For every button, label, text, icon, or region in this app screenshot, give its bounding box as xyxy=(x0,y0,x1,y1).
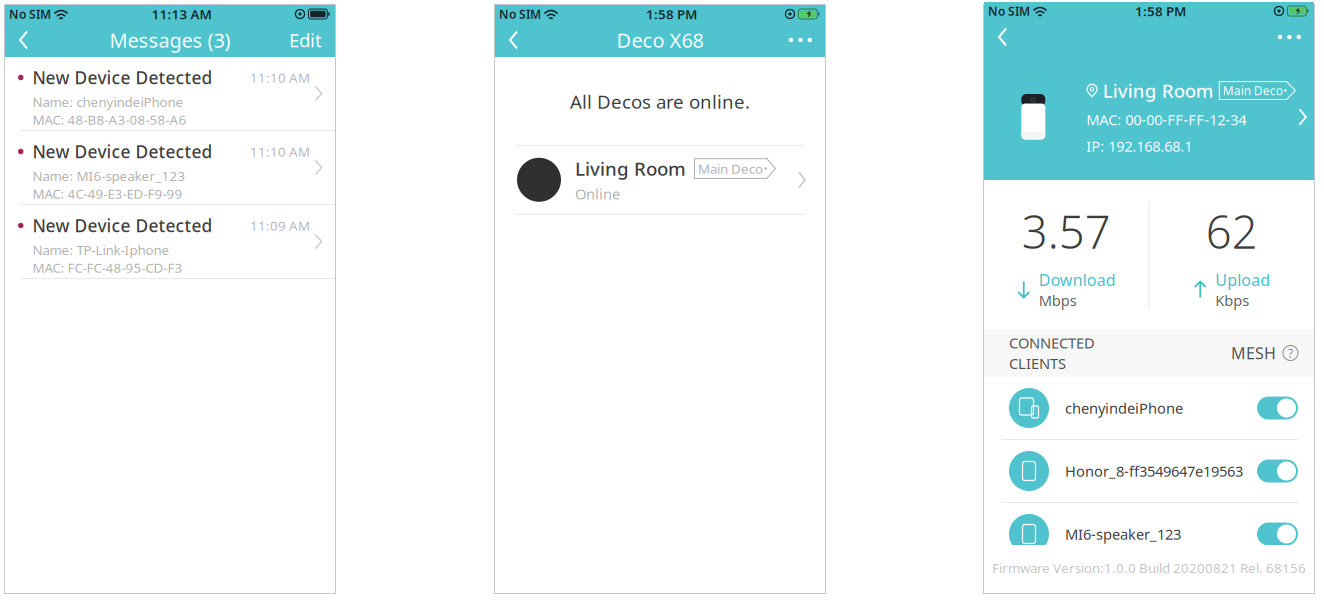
staticText: Online xyxy=(575,184,620,203)
staticText: 62 xyxy=(1206,201,1258,261)
staticText: MESH xyxy=(1231,342,1276,364)
button[interactable]: Honor_8-ff3549647e19563 xyxy=(984,440,1314,503)
staticText: Name: MI6-speaker_123 xyxy=(32,167,185,185)
staticText: Messages (3) xyxy=(109,27,230,53)
staticText: New Device Detected xyxy=(32,66,212,89)
button[interactable]: MI6-speaker_123 xyxy=(984,503,1314,566)
staticText: MAC: 48-B8-A3-08-58-A6 xyxy=(32,111,186,128)
staticText: 11:09 AM xyxy=(250,217,310,234)
button[interactable]: New Device Detected xyxy=(5,205,335,279)
staticText: Living Room xyxy=(1103,78,1214,103)
staticText: IP: 192.168.68.1 xyxy=(1086,136,1192,156)
button[interactable]: Living Room xyxy=(984,54,1314,180)
staticText: CONNECTED xyxy=(1009,333,1095,352)
button[interactable]: Back xyxy=(5,23,47,57)
staticText: MAC: 00-00-FF-FF-12-34 xyxy=(1086,110,1246,129)
staticText: 11:10 AM xyxy=(250,69,310,86)
staticText: No SIM xyxy=(499,6,541,22)
staticText: Name: TP-Link-Iphone xyxy=(32,241,169,259)
button[interactable]: New Device Detected xyxy=(5,131,335,205)
staticText: Honor_8-ff3549647e19563 xyxy=(1065,461,1243,481)
button[interactable]: MESH xyxy=(1231,342,1298,364)
staticText: Upload xyxy=(1215,269,1270,290)
staticText: Kbps xyxy=(1215,290,1249,310)
staticText: 1:58 PM xyxy=(646,5,697,23)
staticText: MAC: FC-FC-48-95-CD-F3 xyxy=(32,259,182,276)
button[interactable]: Edit xyxy=(283,23,335,57)
staticText: chenyindeiPhone xyxy=(1065,398,1183,418)
staticText: All Decos are online. xyxy=(570,89,750,114)
staticText: Main Deco xyxy=(1223,83,1283,98)
button[interactable]: chenyindeiPhone xyxy=(984,377,1314,440)
staticText: Mbps xyxy=(1039,290,1077,310)
button[interactable]: More options xyxy=(1266,20,1314,54)
staticText: New Device Detected xyxy=(32,140,212,163)
staticText: MAC: 4C-49-E3-ED-F9-99 xyxy=(32,185,182,202)
button[interactable]: Living Room xyxy=(495,146,825,214)
staticText: 11:10 AM xyxy=(250,143,310,160)
button[interactable]: More options xyxy=(777,23,825,57)
staticText: Firmware Version:1.0.0 Build 20200821 Re… xyxy=(992,559,1306,577)
button[interactable]: Back xyxy=(984,20,1026,54)
staticText: 11:13 AM xyxy=(151,5,211,23)
staticText: MI6-speaker_123 xyxy=(1065,524,1181,544)
button[interactable]: Back xyxy=(495,23,537,57)
staticText: 1:58 PM xyxy=(1135,2,1186,20)
staticText: No SIM xyxy=(9,6,51,22)
staticText: New Device Detected xyxy=(32,214,212,237)
staticText: Edit xyxy=(289,28,322,52)
staticText: 3.57 xyxy=(1022,201,1111,261)
staticText: Deco X68 xyxy=(616,27,703,53)
staticText: ? xyxy=(1288,345,1293,361)
staticText: Name: chenyindeiPhone xyxy=(32,93,183,111)
button[interactable]: New Device Detected xyxy=(5,57,335,131)
staticText: CLIENTS xyxy=(1009,353,1066,373)
staticText: Main Deco xyxy=(698,160,763,177)
staticText: Download xyxy=(1039,269,1116,290)
staticText: Living Room xyxy=(575,156,686,181)
staticText: No SIM xyxy=(988,3,1030,19)
